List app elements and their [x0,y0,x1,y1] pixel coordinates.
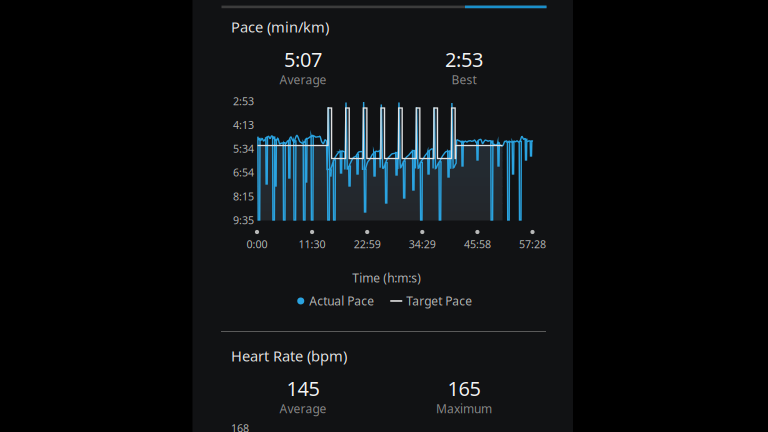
staticText: 22:59 [354,237,381,251]
staticText: 5:07 [284,46,322,73]
staticText: 168 [231,421,249,432]
staticText: 8:15 [233,189,254,203]
staticText: Best [451,72,476,87]
staticText: 11:30 [299,237,326,251]
staticText: 2:53 [445,46,483,73]
staticText: 0:00 [246,237,267,251]
staticText: 2:53 [233,94,254,108]
staticText: 45:58 [464,237,491,251]
staticText: Average [279,72,326,87]
staticText: Actual Pace [309,293,374,309]
staticText: Time (h:m:s) [352,270,421,286]
staticText: Pace (min/km) [231,17,329,36]
staticText: Average [279,401,326,416]
staticText: 145 [286,375,319,402]
staticText: 5:34 [233,142,254,156]
staticText: 4:13 [233,118,254,132]
button[interactable]: Actual Pace [297,293,374,309]
staticText: 57:28 [519,237,546,251]
staticText: 9:35 [233,213,254,227]
staticText: 6:54 [233,165,254,180]
staticText: 165 [447,375,480,402]
staticText: Heart Rate (bpm) [231,346,347,365]
staticText: Target Pace [406,293,472,309]
staticText: Maximum [436,401,492,416]
staticText: 34:29 [409,237,436,251]
button[interactable]: Target Pace [390,293,472,309]
